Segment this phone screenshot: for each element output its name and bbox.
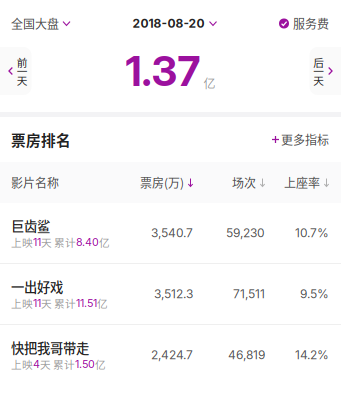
staticText: 一出好戏 [11, 277, 63, 296]
staticText: 全国大盘 [11, 15, 59, 32]
staticText: 巨齿鲨 [11, 216, 50, 235]
staticText: 上映 [11, 295, 33, 311]
staticText: 9.5% [300, 287, 329, 301]
staticText: 亿 [97, 295, 108, 311]
staticText: 票房(万) [140, 174, 184, 191]
staticText: 11 [33, 235, 41, 248]
button[interactable]: 后一天 [305, 47, 341, 95]
staticText: 10.7% [295, 226, 329, 240]
staticText: 11.51 [76, 296, 97, 309]
button[interactable]: 票房(万) [123, 162, 193, 203]
button[interactable]: 巨齿鲨 [0, 203, 341, 263]
staticText: 2,424.7 [151, 348, 193, 362]
button[interactable]: 场次 [193, 162, 265, 203]
staticText: 上映 [11, 356, 33, 372]
staticText: 11 [33, 296, 41, 309]
staticText: 快把我哥带走 [11, 338, 89, 357]
staticText: 上映 [11, 234, 33, 250]
staticText: 服务费 [293, 15, 329, 32]
staticText: 前 [17, 54, 28, 70]
staticText: 1.37 [125, 46, 200, 96]
staticText: 59,230 [226, 226, 265, 240]
staticText: 票房排名 [11, 129, 71, 150]
staticText: 天 [17, 72, 28, 88]
staticText: 8.40 [76, 235, 99, 248]
staticText: 天 累计 [41, 234, 76, 250]
staticText: 71,511 [233, 287, 265, 301]
staticText: 46,819 [228, 348, 265, 362]
staticText: 2018-08-20 [132, 16, 204, 31]
staticText: 场次 [232, 174, 256, 191]
staticText: 亿 [99, 234, 110, 250]
button[interactable]: 2018-08-20 [132, 0, 216, 47]
staticText: 亿 [203, 75, 215, 92]
staticText: 一 [313, 63, 324, 79]
button[interactable]: 上座率 [265, 162, 329, 203]
button[interactable]: 更多指标 [272, 117, 329, 162]
staticText: 3,540.7 [151, 226, 193, 240]
staticText: 4 [33, 357, 40, 370]
staticText: 一 [17, 63, 28, 79]
staticText: 14.2% [295, 348, 329, 362]
button[interactable]: 一出好戏 [0, 264, 341, 324]
button[interactable]: 快把我哥带走 [0, 325, 341, 385]
button[interactable]: 前一天 [0, 47, 36, 95]
staticText: 更多指标 [281, 131, 329, 148]
staticText: 3,512.3 [154, 287, 193, 301]
staticText: 1.50 [75, 357, 95, 370]
button[interactable]: 全国大盘 [0, 0, 76, 47]
button[interactable]: 服务费 [273, 0, 341, 47]
staticText: 后 [313, 54, 324, 70]
staticText: 天 累计 [41, 295, 76, 311]
staticText: 上座率 [284, 174, 320, 191]
staticText: 亿 [95, 356, 106, 372]
staticText: 天 累计 [40, 356, 75, 372]
staticText: 影片名称 [11, 174, 59, 191]
staticText: 天 [313, 72, 324, 88]
